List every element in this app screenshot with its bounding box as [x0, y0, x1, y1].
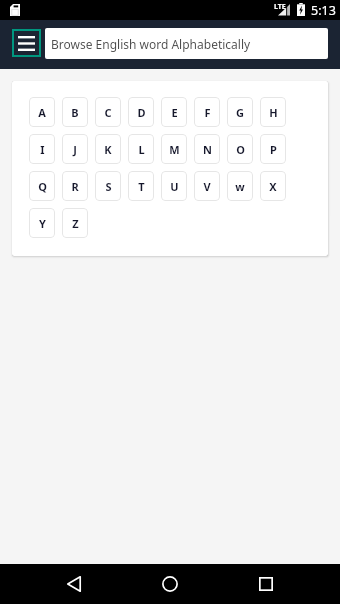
staticText: C	[104, 105, 112, 120]
staticText: w	[235, 179, 245, 194]
button[interactable]: O	[227, 134, 253, 164]
button[interactable]: P	[260, 134, 286, 164]
button[interactable]: w	[227, 171, 253, 201]
button[interactable]: U	[161, 171, 187, 201]
staticText: S	[105, 179, 112, 194]
button[interactable]: H	[260, 97, 286, 127]
button[interactable]: G	[227, 97, 253, 127]
button[interactable]: Z	[62, 208, 88, 238]
staticText: V	[203, 179, 211, 194]
staticText: J	[73, 142, 77, 157]
staticText: O	[236, 142, 245, 157]
button[interactable]: F	[194, 97, 220, 127]
staticText: N	[203, 142, 212, 157]
button[interactable]: L	[128, 134, 154, 164]
button[interactable]: B	[62, 97, 88, 127]
staticText: 5:13	[311, 2, 336, 19]
button[interactable]: Home	[150, 564, 190, 604]
button[interactable]: X	[260, 171, 286, 201]
staticText: H	[269, 105, 278, 120]
button[interactable]: Q	[29, 171, 55, 201]
button[interactable]: D	[128, 97, 154, 127]
staticText: Browse English word Alphabetically	[51, 36, 251, 52]
button[interactable]: Recents	[246, 564, 286, 604]
button[interactable]: N	[194, 134, 220, 164]
button[interactable]: E	[161, 97, 187, 127]
staticText: R	[71, 179, 79, 194]
staticText: G	[236, 105, 244, 120]
staticText: X	[269, 179, 277, 194]
staticText: F	[204, 105, 211, 120]
staticText: LTE	[274, 2, 286, 12]
button[interactable]: M	[161, 134, 187, 164]
button[interactable]: R	[62, 171, 88, 201]
button[interactable]: Y	[29, 208, 55, 238]
staticText: A	[38, 105, 46, 120]
button[interactable]: Browse English word Alphabetically	[45, 28, 328, 59]
staticText: I	[40, 142, 45, 157]
button[interactable]: S	[95, 171, 121, 201]
button[interactable]: V	[194, 171, 220, 201]
staticText: K	[104, 142, 112, 157]
staticText: T	[138, 179, 145, 194]
staticText: E	[171, 105, 178, 120]
button[interactable]: I	[29, 134, 55, 164]
staticText: D	[137, 105, 146, 120]
staticText: M	[169, 142, 180, 157]
button[interactable]: K	[95, 134, 121, 164]
button[interactable]: Back	[54, 564, 94, 604]
staticText: U	[170, 179, 179, 194]
staticText: B	[71, 105, 79, 120]
button[interactable]: J	[62, 134, 88, 164]
staticText: Y	[39, 216, 46, 231]
button[interactable]: Menu	[12, 29, 41, 57]
staticText: P	[270, 142, 277, 157]
button[interactable]: T	[128, 171, 154, 201]
staticText: Z	[72, 216, 79, 231]
staticText: Q	[38, 179, 47, 194]
button[interactable]: A	[29, 97, 55, 127]
staticText: L	[138, 142, 145, 157]
button[interactable]: C	[95, 97, 121, 127]
